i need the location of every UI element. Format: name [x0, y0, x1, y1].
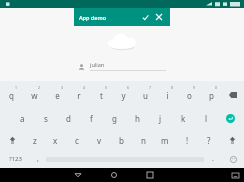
staticText: 9 — [193, 85, 196, 90]
staticText: n — [141, 135, 146, 146]
button[interactable]: Confirm — [139, 11, 151, 23]
button[interactable]: Home — [96, 168, 132, 182]
button[interactable]: Switch keyboard — [226, 168, 244, 182]
staticText: r — [77, 90, 81, 101]
staticText: b — [119, 135, 124, 146]
staticText: y — [121, 90, 126, 101]
button[interactable]: Recents — [132, 168, 168, 182]
staticText: h — [135, 113, 140, 124]
staticText: m — [161, 135, 169, 146]
button[interactable]: y — [112, 84, 134, 106]
staticText: q — [9, 90, 14, 101]
button[interactable]: s — [34, 108, 57, 128]
staticText: k — [181, 113, 186, 124]
button[interactable]: n — [132, 130, 154, 150]
button[interactable]: ! — [176, 130, 198, 150]
staticText: s — [44, 113, 48, 124]
staticText: p — [209, 90, 214, 101]
staticText: t — [100, 90, 103, 101]
staticText: d — [66, 113, 71, 124]
button[interactable]: l — [195, 108, 218, 128]
staticText: 6 — [127, 85, 130, 90]
button[interactable]: Emoji — [222, 151, 244, 167]
button[interactable]: ? — [198, 130, 220, 150]
staticText: 7 — [149, 85, 152, 90]
button[interactable]: Shift — [220, 130, 244, 150]
staticText: i — [166, 90, 169, 101]
button[interactable]: r — [68, 84, 90, 106]
button[interactable]: g — [103, 108, 126, 128]
button[interactable]: v — [88, 130, 110, 150]
staticText: ?123 — [9, 155, 22, 163]
staticText: 5 — [105, 85, 108, 90]
button[interactable]: i — [156, 84, 178, 106]
staticText: z — [33, 135, 37, 146]
staticText: 8 — [171, 85, 174, 90]
staticText: e — [55, 90, 60, 101]
staticText: v — [97, 135, 102, 146]
staticText: 1 — [15, 85, 18, 90]
staticText: . — [212, 154, 214, 164]
button[interactable]: p — [200, 84, 222, 106]
button[interactable]: x — [45, 130, 66, 150]
button[interactable]: Enter — [218, 108, 242, 128]
button[interactable]: , — [30, 151, 46, 167]
staticText: 3 — [61, 85, 64, 90]
staticText: f — [90, 113, 93, 124]
button[interactable]: Backspace — [222, 84, 244, 106]
staticText: 2 — [38, 85, 41, 90]
button[interactable]: z — [24, 130, 45, 150]
button[interactable]: a — [10, 108, 34, 128]
button[interactable]: o — [178, 84, 200, 106]
button[interactable]: b — [110, 130, 132, 150]
button[interactable]: m — [154, 130, 176, 150]
staticText: 0 — [215, 85, 218, 90]
button[interactable]: . — [204, 151, 222, 167]
staticText: g — [112, 113, 117, 124]
staticText: 4 — [83, 85, 86, 90]
button[interactable]: k — [172, 108, 195, 128]
button[interactable]: Shift — [0, 130, 24, 150]
staticText: , — [37, 154, 39, 164]
staticText: a — [20, 113, 25, 124]
button[interactable]: t — [90, 84, 112, 106]
staticText: c — [75, 135, 79, 146]
button[interactable]: d — [57, 108, 80, 128]
button[interactable]: u — [134, 84, 156, 106]
button[interactable]: f — [80, 108, 103, 128]
button[interactable]: e — [46, 84, 68, 106]
staticText: julian — [90, 61, 105, 68]
staticText: j — [159, 113, 162, 124]
button[interactable]: h — [126, 108, 149, 128]
staticText: ! — [186, 135, 189, 146]
button[interactable]: ?123 — [0, 151, 30, 167]
staticText: l — [205, 113, 208, 124]
staticText: w — [31, 90, 38, 101]
button[interactable]: j — [149, 108, 172, 128]
staticText: u — [143, 90, 148, 101]
button[interactable]: w — [23, 84, 46, 106]
button[interactable]: Space — [46, 155, 204, 163]
button[interactable]: q — [0, 84, 23, 106]
staticText: App demo — [79, 14, 106, 21]
staticText: ? — [207, 135, 211, 146]
staticText: o — [187, 90, 192, 101]
button[interactable]: c — [66, 130, 88, 150]
button[interactable]: Close — [153, 11, 165, 23]
button[interactable]: Back — [59, 168, 96, 182]
staticText: x — [53, 135, 58, 146]
staticText: •••••• — [90, 79, 103, 86]
